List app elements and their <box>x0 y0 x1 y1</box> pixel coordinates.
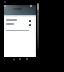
button[interactable] <box>26 58 28 60</box>
button[interactable] <box>12 58 15 61</box>
button[interactable] <box>4 28 36 33</box>
button[interactable] <box>4 18 36 23</box>
button[interactable] <box>4 5 36 15</box>
button[interactable] <box>4 22 36 27</box>
